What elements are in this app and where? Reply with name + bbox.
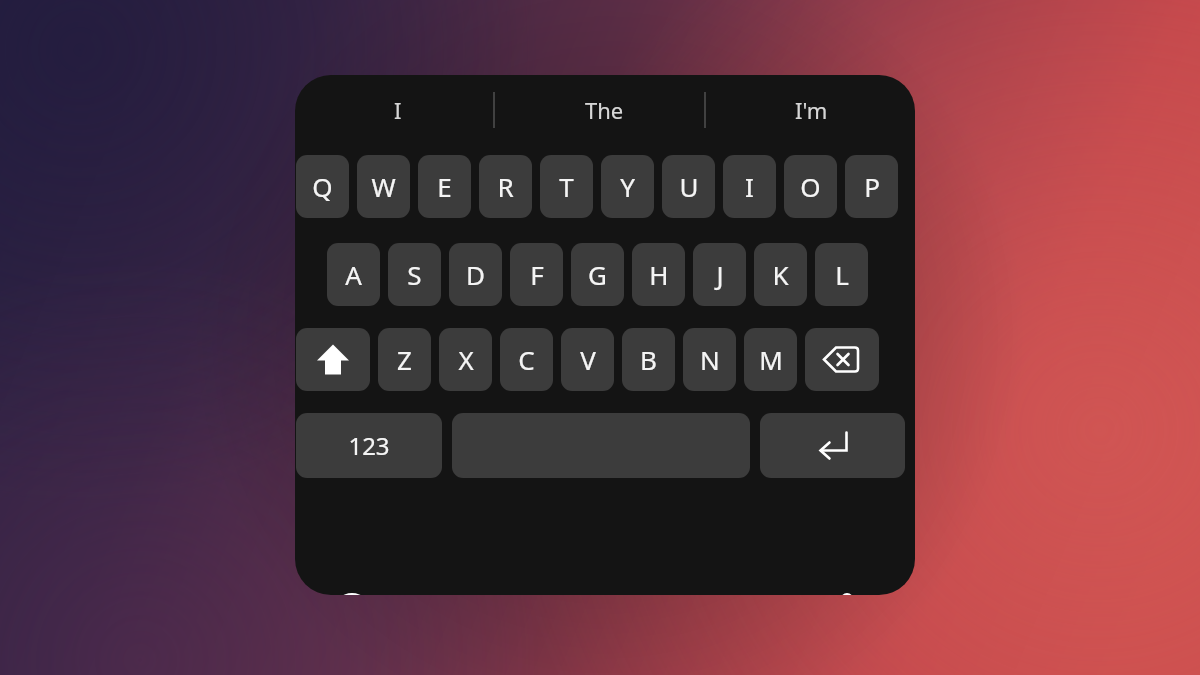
button[interactable]: G [571,243,624,306]
staticText: Q [312,169,333,204]
staticText: S [407,257,422,292]
staticText: F [530,257,544,292]
staticText: N [700,342,720,377]
staticText: K [772,257,789,292]
staticText: J [716,257,724,292]
button[interactable]: R [479,155,532,218]
button[interactable]: E [418,155,471,218]
staticText: U [679,169,699,204]
staticText: I [745,169,754,204]
button[interactable]: U [662,155,715,218]
button[interactable]: I [723,155,776,218]
button[interactable]: I [295,75,501,145]
staticText: 123 [348,429,390,462]
button[interactable]: Shift [296,328,370,391]
staticText: H [649,257,669,292]
button[interactable]: S [388,243,441,306]
button[interactable]: W [357,155,410,218]
button[interactable]: X [439,328,492,391]
staticText: X [458,342,474,377]
button[interactable]: M [744,328,797,391]
staticText: T [559,169,574,204]
button[interactable]: Backspace [805,328,879,391]
button[interactable]: P [845,155,898,218]
staticText: E [437,169,452,204]
button[interactable]: Z [378,328,431,391]
button[interactable]: B [622,328,675,391]
button[interactable]: L [815,243,868,306]
staticText: V [580,342,596,377]
button[interactable]: Enter [760,413,905,478]
button[interactable]: F [510,243,563,306]
button[interactable]: O [784,155,837,218]
staticText: M [759,342,783,377]
staticText: C [518,342,535,377]
button[interactable]: 123 [296,413,442,478]
staticText: B [640,342,657,377]
button[interactable]: A [327,243,380,306]
staticText: I [394,95,402,125]
button[interactable]: I'm [708,75,915,145]
button[interactable]: V [561,328,614,391]
staticText: P [864,169,880,204]
button[interactable]: Y [601,155,654,218]
staticText: Z [397,342,412,377]
staticText: A [345,257,362,292]
button[interactable]: Q [296,155,349,218]
staticText: G [588,257,607,292]
button[interactable]: T [540,155,593,218]
button[interactable]: The [501,75,708,145]
button[interactable]: C [500,328,553,391]
staticText: W [371,169,396,204]
button[interactable]: H [632,243,685,306]
staticText: D [466,257,485,292]
staticText: Y [620,169,635,204]
button[interactable]: K [754,243,807,306]
button[interactable]: N [683,328,736,391]
staticText: O [800,169,821,204]
staticText: R [497,169,514,204]
staticText: The [585,95,624,125]
button[interactable]: D [449,243,502,306]
button[interactable]: J [693,243,746,306]
button[interactable]: Emoji [329,589,375,595]
staticText: L [835,257,849,292]
staticText: I'm [795,95,828,125]
button[interactable]: Voice input [824,589,870,595]
